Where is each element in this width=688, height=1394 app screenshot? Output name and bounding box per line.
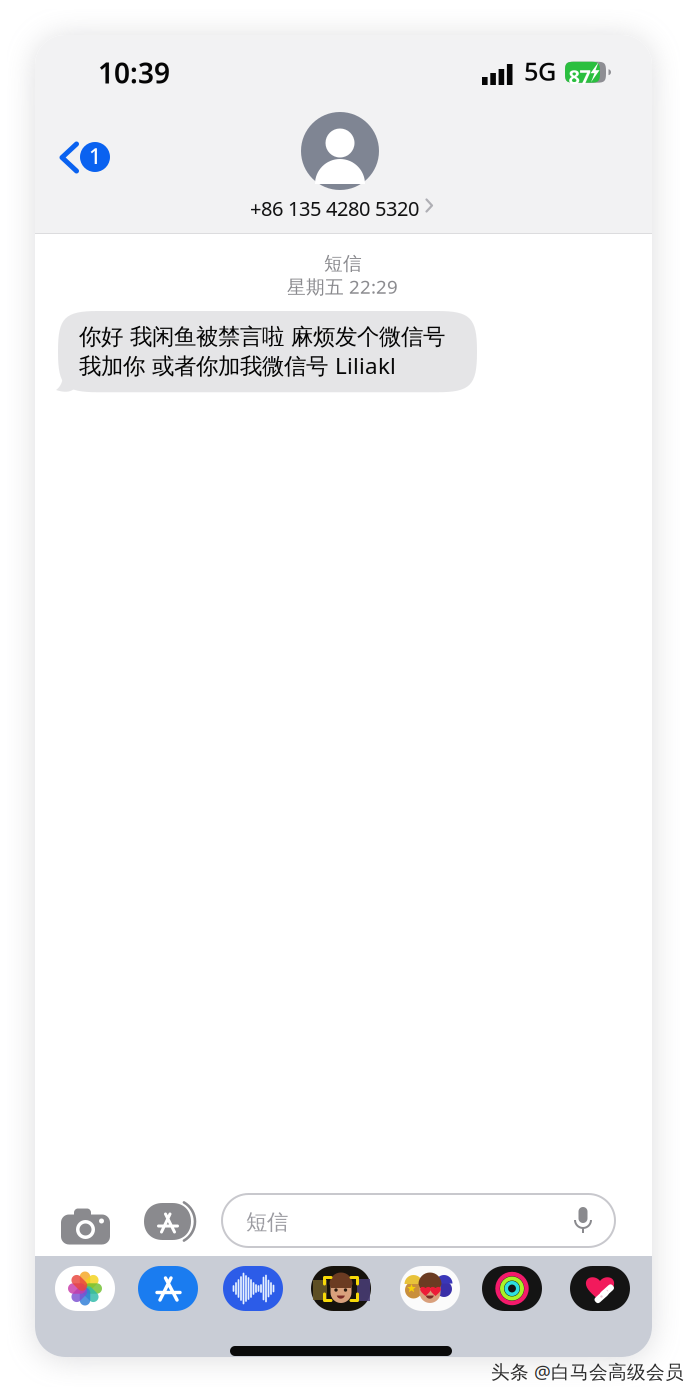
button[interactable]: Stickers: [400, 1266, 460, 1311]
staticText: 头条 @白马会高级会员: [491, 1359, 684, 1384]
button[interactable]: Camera: [52, 1195, 119, 1250]
button[interactable]: +86 135 4280 5320: [225, 112, 465, 224]
staticText: 短信: [246, 1209, 288, 1235]
staticText: 星期五 22:29: [287, 274, 398, 299]
button[interactable]: Audio message: [223, 1266, 283, 1311]
button[interactable]: App Store: [138, 1266, 198, 1311]
button[interactable]: Activity: [482, 1266, 542, 1311]
staticText: 短信: [324, 252, 362, 275]
staticText: 1: [89, 142, 101, 170]
staticText: 5G: [524, 54, 556, 88]
button[interactable]: Memoji: [311, 1266, 371, 1311]
staticText: 你好 我闲鱼被禁言啦 麻烦发个微信号 我加你 或者你加我微信号 Liliakl: [79, 323, 445, 380]
button[interactable]: Photos: [55, 1266, 115, 1311]
staticText: 87: [568, 63, 590, 90]
button[interactable]: 短信: [222, 1194, 615, 1247]
button[interactable]: Health: [570, 1266, 630, 1311]
button[interactable]: Apps: [136, 1195, 204, 1248]
button[interactable]: Back: [51, 126, 131, 188]
staticText: +86 135 4280 5320: [250, 195, 419, 222]
staticText: 10:39: [98, 54, 170, 91]
